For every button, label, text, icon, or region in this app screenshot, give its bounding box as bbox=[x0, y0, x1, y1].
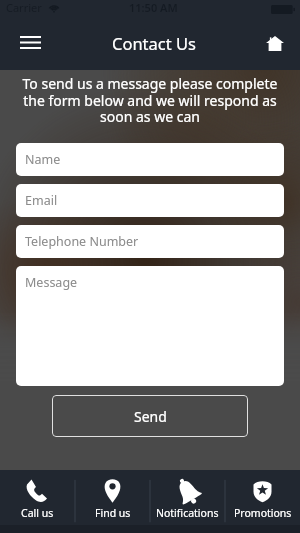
button[interactable]: Open navigation menu bbox=[13, 25, 48, 60]
staticText: Telephone Number bbox=[25, 233, 139, 250]
button[interactable]: Send bbox=[52, 395, 248, 437]
staticText: Call us bbox=[21, 506, 54, 520]
staticText: Send bbox=[134, 407, 167, 426]
staticText: Notifications bbox=[156, 506, 219, 520]
staticText: Find us bbox=[95, 506, 131, 520]
button[interactable]: Notifications bbox=[150, 470, 225, 525]
button[interactable]: Telephone Number bbox=[16, 225, 284, 258]
button[interactable]: Home bbox=[257, 26, 292, 61]
staticText: Carrier bbox=[6, 0, 42, 15]
button[interactable]: Email bbox=[16, 184, 284, 217]
staticText: 11:50 AM bbox=[129, 0, 178, 15]
button[interactable]: Promotions bbox=[225, 470, 300, 525]
staticText: Name bbox=[25, 151, 61, 168]
staticText: Email bbox=[25, 192, 58, 209]
staticText: Contact Us bbox=[112, 32, 196, 54]
staticText: To send us a message please complete the… bbox=[16, 74, 284, 126]
staticText: Message bbox=[25, 274, 78, 291]
button[interactable]: Find us bbox=[75, 470, 150, 525]
button[interactable]: Message bbox=[16, 266, 284, 386]
button[interactable]: Call us bbox=[0, 470, 75, 525]
button[interactable]: Name bbox=[16, 143, 284, 176]
staticText: Promotions bbox=[234, 506, 292, 520]
